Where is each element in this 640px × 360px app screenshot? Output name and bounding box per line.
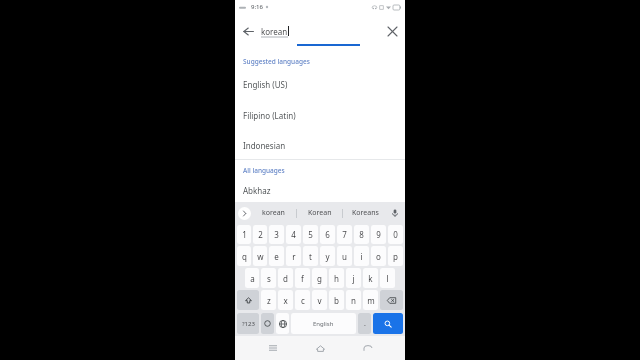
staticText: c [301, 295, 305, 306]
button[interactable]: l [380, 268, 395, 288]
staticText: r [292, 251, 296, 262]
button[interactable]: w [253, 246, 267, 266]
button[interactable]: x [278, 290, 293, 310]
button[interactable]: c [295, 290, 310, 310]
staticText: o [376, 251, 381, 262]
staticText: q [242, 251, 247, 262]
button[interactable]: b [329, 290, 344, 310]
button[interactable]: h [329, 268, 344, 288]
staticText: w [257, 251, 264, 262]
button[interactable]: Home [310, 338, 330, 358]
button[interactable]: e [269, 246, 284, 266]
button[interactable]: d [278, 268, 293, 288]
staticText: s [267, 273, 271, 284]
staticText: English [313, 320, 334, 328]
staticText: p [393, 251, 398, 262]
staticText: Suggested languages [243, 57, 310, 66]
button[interactable]: 6 [320, 225, 335, 244]
button[interactable]: j [346, 268, 361, 288]
button[interactable]: Voice input [388, 206, 402, 220]
staticText: x [283, 295, 288, 306]
staticText: 9 [376, 229, 381, 240]
button[interactable]: Emoji [261, 313, 274, 334]
button[interactable]: k [363, 268, 378, 288]
button[interactable]: . [358, 313, 371, 334]
staticText: e [274, 251, 279, 262]
staticText: 9:16 [251, 3, 263, 11]
staticText: 0 [393, 229, 398, 240]
button[interactable]: Indonesian [235, 131, 405, 159]
button[interactable]: 8 [354, 225, 369, 244]
button[interactable]: English (US) [235, 69, 405, 100]
staticText: Koreans [352, 208, 379, 218]
button[interactable]: Shift [237, 290, 259, 310]
staticText: b [334, 295, 339, 306]
button[interactable]: 4 [286, 225, 301, 244]
button[interactable]: f [295, 268, 310, 288]
button[interactable]: m [363, 290, 378, 310]
staticText: k [368, 273, 373, 284]
button[interactable]: Abkhaz [235, 178, 405, 202]
staticText: . [364, 319, 366, 329]
staticText: 8 [359, 229, 364, 240]
staticText: v [317, 295, 322, 306]
button[interactable]: q [237, 246, 251, 266]
button[interactable]: u [337, 246, 352, 266]
button[interactable]: o [371, 246, 386, 266]
button[interactable]: Korean [297, 202, 342, 224]
staticText: 5 [308, 229, 313, 240]
button[interactable]: 2 [253, 225, 267, 244]
button[interactable]: Change keyboard language [276, 313, 289, 334]
staticText: 6 [325, 229, 330, 240]
button[interactable]: More suggestions [238, 207, 251, 220]
button[interactable]: Clear search [379, 16, 405, 46]
staticText: a [250, 273, 255, 284]
staticText: t [309, 251, 312, 262]
staticText: d [283, 273, 288, 284]
staticText: Indonesian [243, 140, 286, 151]
button[interactable]: 5 [303, 225, 318, 244]
button[interactable]: 9 [371, 225, 386, 244]
staticText: n [351, 295, 356, 306]
button[interactable]: 0 [388, 225, 403, 244]
button[interactable]: korean [251, 202, 296, 224]
button[interactable]: Koreans [343, 202, 388, 224]
button[interactable]: 1 [237, 225, 251, 244]
staticText: j [352, 273, 355, 284]
staticText: m [367, 295, 375, 306]
button[interactable]: Backspace [380, 290, 403, 310]
button[interactable]: n [346, 290, 361, 310]
button[interactable]: a [245, 268, 259, 288]
button[interactable]: Filipino (Latin) [235, 100, 405, 131]
button[interactable]: ?123 [237, 313, 259, 334]
staticText: 2 [258, 229, 263, 240]
staticText: z [267, 295, 271, 306]
button[interactable]: p [388, 246, 403, 266]
staticText: 1 [242, 229, 247, 240]
button[interactable]: Search [373, 313, 403, 334]
staticText: korean [261, 26, 288, 37]
button[interactable]: r [286, 246, 301, 266]
button[interactable]: Recent apps [263, 338, 283, 358]
staticText: Filipino (Latin) [243, 110, 296, 121]
staticText: y [325, 251, 330, 262]
staticText: English (US) [243, 79, 288, 90]
button[interactable]: Back [235, 16, 261, 46]
button[interactable]: i [354, 246, 369, 266]
button[interactable]: English [291, 313, 356, 334]
button[interactable]: s [261, 268, 276, 288]
button[interactable]: Back [358, 338, 378, 358]
staticText: g [317, 273, 322, 284]
button[interactable]: t [303, 246, 318, 266]
staticText: f [301, 273, 304, 284]
staticText: Korean [308, 208, 332, 218]
button[interactable]: 3 [269, 225, 284, 244]
button[interactable]: z [261, 290, 276, 310]
button[interactable]: y [320, 246, 335, 266]
button[interactable]: 7 [337, 225, 352, 244]
button[interactable]: v [312, 290, 327, 310]
staticText: 7 [342, 229, 347, 240]
staticText: u [342, 251, 347, 262]
button[interactable]: g [312, 268, 327, 288]
staticText: 3 [274, 229, 279, 240]
